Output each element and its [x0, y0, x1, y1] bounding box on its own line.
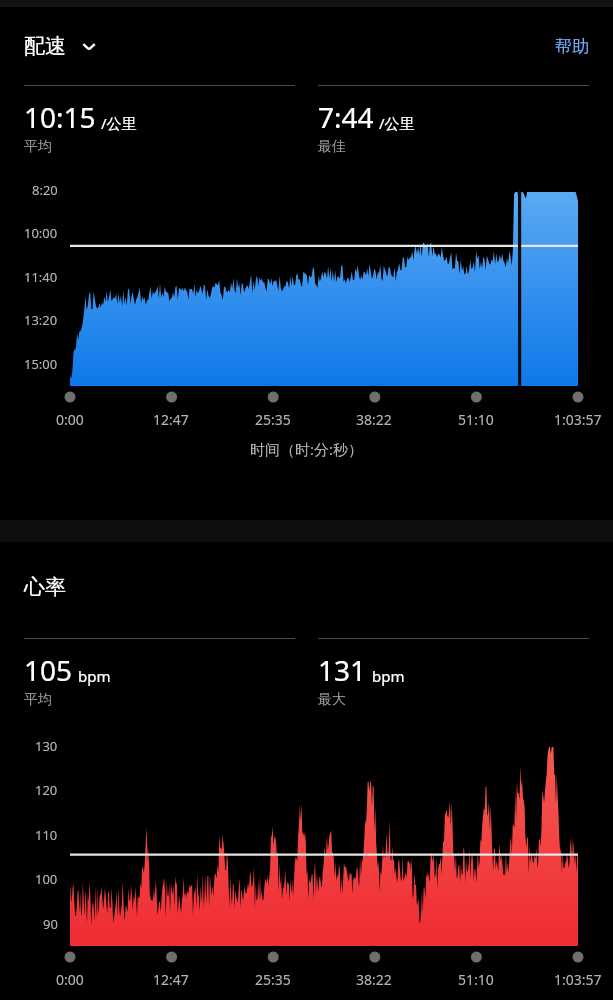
other: Change metric — [78, 35, 100, 57]
staticText: 15:00 — [24, 355, 58, 373]
staticText: 131 — [318, 651, 367, 689]
staticText: 10:15 — [24, 98, 96, 136]
button[interactable] — [70, 745, 578, 946]
staticText: 最大 — [318, 691, 346, 709]
staticText: bpm — [372, 666, 405, 686]
staticText: 110 — [35, 826, 58, 844]
staticText: 1:03:57 — [554, 970, 602, 989]
staticText: 心率 — [24, 574, 66, 600]
staticText: 120 — [35, 781, 58, 799]
staticText: 10:00 — [24, 224, 58, 242]
staticText: 38:22 — [356, 410, 392, 429]
staticText: /公里 — [101, 113, 137, 133]
staticText: 0:00 — [56, 970, 84, 989]
button[interactable]: 帮助 — [555, 36, 589, 57]
button[interactable]: 7:44 — [318, 85, 589, 156]
staticText: 7:44 — [318, 98, 374, 136]
button[interactable]: 10:15 — [24, 85, 295, 156]
staticText: 帮助 — [555, 36, 589, 57]
staticText: 8:20 — [32, 181, 58, 199]
staticText: 105 — [24, 651, 73, 689]
button[interactable]: 心率 — [24, 574, 66, 600]
staticText: 90 — [43, 915, 58, 933]
staticText: 1:03:57 — [554, 410, 602, 429]
staticText: 51:10 — [458, 410, 494, 429]
button[interactable] — [70, 190, 578, 386]
staticText: 100 — [35, 870, 58, 888]
staticText: 配速 — [24, 33, 66, 59]
staticText: 最佳 — [318, 138, 346, 156]
button[interactable]: 105 — [24, 638, 295, 709]
staticText: 13:20 — [24, 311, 58, 329]
staticText: 平均 — [24, 138, 52, 156]
staticText: 38:22 — [356, 970, 392, 989]
staticText: /公里 — [379, 113, 415, 133]
staticText: 12:47 — [153, 970, 189, 989]
staticText: 12:47 — [153, 410, 189, 429]
staticText: 平均 — [24, 691, 52, 709]
staticText: 25:35 — [255, 410, 291, 429]
staticText: bpm — [78, 666, 111, 686]
staticText: 11:40 — [24, 268, 58, 286]
staticText: 时间（时:分:秒） — [250, 439, 364, 459]
staticText: 0:00 — [56, 410, 84, 429]
staticText: 130 — [35, 737, 58, 755]
staticText: 25:35 — [255, 970, 291, 989]
staticText: 51:10 — [458, 970, 494, 989]
button[interactable]: 配速 — [24, 33, 100, 59]
button[interactable]: 131 — [318, 638, 589, 709]
